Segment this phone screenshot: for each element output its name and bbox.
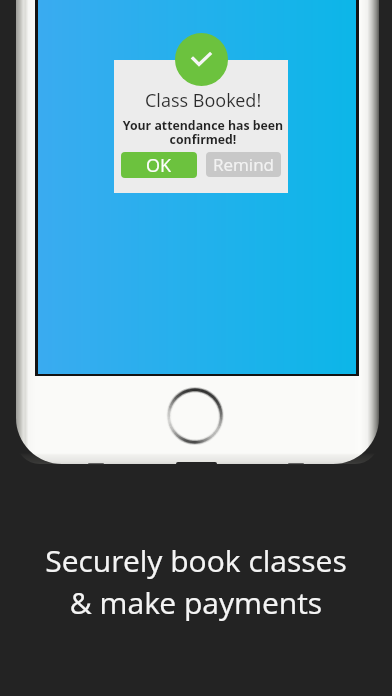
button[interactable]: Remind [206,152,281,177]
staticText: Remind [213,153,275,176]
staticText: Your attendance has been confirmed! [116,117,290,148]
button[interactable]: OK [121,152,197,178]
staticText: Class Booked! [145,88,262,113]
staticText: Securely book classes & make payments [45,540,347,623]
staticText: OK [146,153,172,178]
